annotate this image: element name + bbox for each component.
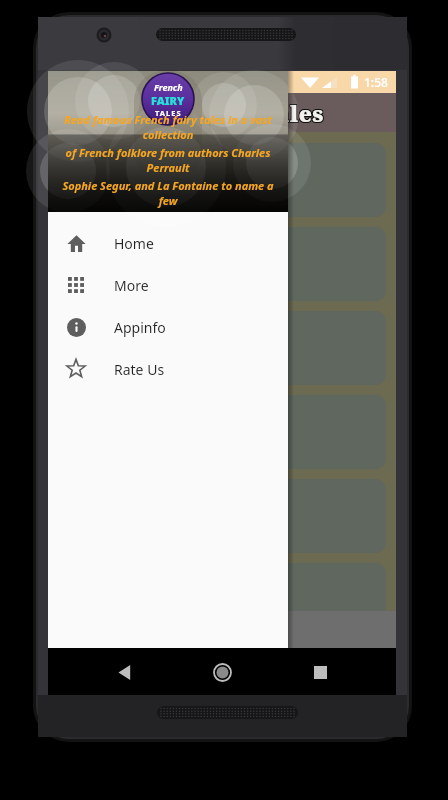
staticText: 1:58 bbox=[364, 74, 388, 90]
button[interactable]: P bbox=[58, 479, 386, 553]
staticText: French bbox=[154, 81, 183, 93]
staticText: French Fairy Tales bbox=[100, 99, 324, 129]
staticText: Rate Us bbox=[114, 360, 165, 379]
staticText: C bbox=[211, 159, 233, 200]
button[interactable]: Back bbox=[102, 650, 146, 694]
staticText: C bbox=[210, 161, 232, 202]
button[interactable]: Rate Us bbox=[48, 348, 288, 390]
button[interactable]: F bbox=[58, 227, 386, 301]
staticText: C bbox=[210, 160, 232, 201]
staticText: Appinfo bbox=[114, 318, 166, 337]
staticText: Sophie Segur, and La Fontaine to name a … bbox=[52, 178, 284, 208]
staticText: of French folklore from authors Charles … bbox=[52, 145, 284, 175]
staticText: C bbox=[212, 159, 234, 200]
staticText: Home bbox=[114, 234, 154, 253]
staticText: C bbox=[212, 160, 234, 201]
staticText: TALES bbox=[155, 108, 182, 118]
staticText: Read famous French fairy tales in a vast… bbox=[52, 112, 284, 142]
button[interactable]: Home bbox=[200, 650, 244, 694]
button[interactable]: M bbox=[58, 395, 386, 469]
staticText: C bbox=[212, 161, 234, 202]
button[interactable]: Open navigation drawer bbox=[58, 96, 92, 130]
staticText: French Fairy Tales bbox=[99, 99, 323, 129]
staticText: C bbox=[211, 161, 233, 202]
button[interactable]: Recent apps bbox=[298, 650, 342, 694]
staticText: French Fairy Tales bbox=[99, 98, 323, 128]
button[interactable]: More bbox=[48, 264, 288, 306]
staticText: French Fairy Tales bbox=[101, 98, 325, 128]
button[interactable]: S bbox=[58, 563, 386, 637]
staticText: FAIRY bbox=[151, 93, 185, 108]
staticText: French Fairy Tales bbox=[100, 98, 324, 128]
staticText: French Fairy Tales bbox=[101, 97, 325, 127]
staticText: C bbox=[210, 159, 232, 200]
button[interactable]: Appinfo bbox=[48, 306, 288, 348]
staticText: More bbox=[114, 276, 149, 295]
staticText: French Fairy Tales bbox=[100, 97, 324, 127]
staticText: C bbox=[211, 160, 233, 201]
button[interactable]: Home bbox=[48, 222, 288, 264]
staticText: French Fairy Tales bbox=[99, 97, 323, 127]
button[interactable]: C bbox=[58, 143, 386, 217]
button[interactable]: I bbox=[58, 311, 386, 385]
staticText: French Fairy Tales bbox=[101, 99, 325, 129]
